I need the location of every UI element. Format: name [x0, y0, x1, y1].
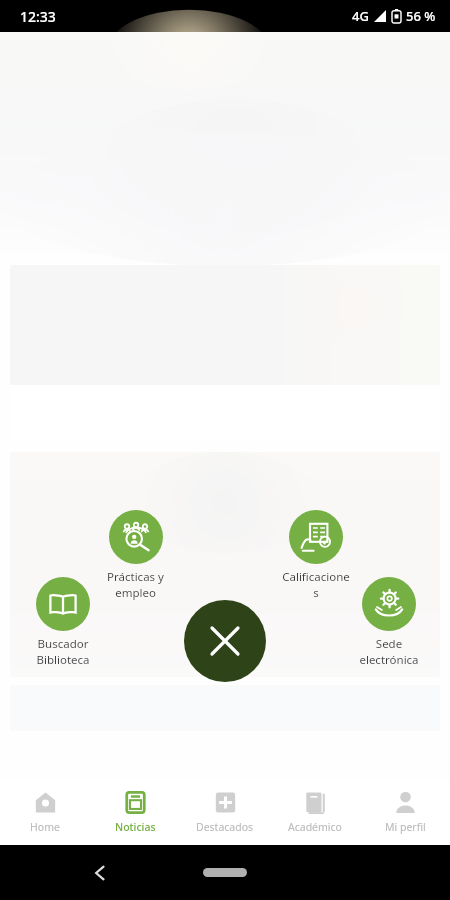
- button[interactable]: Académico: [270, 780, 360, 845]
- button[interactable]: Home: [0, 780, 90, 845]
- button[interactable]: Buscador Biblioteca: [8, 577, 118, 667]
- staticText: Sede electrónica: [359, 636, 419, 667]
- staticText: Noticias: [115, 820, 156, 834]
- staticText: 56 %: [406, 7, 436, 25]
- staticText: Académico: [288, 820, 342, 834]
- other: Home: [203, 868, 247, 877]
- other: Sede electrónica: [362, 577, 416, 631]
- staticText: Buscador Biblioteca: [36, 636, 90, 667]
- staticText: Destacados: [196, 820, 254, 834]
- staticText: 4G: [352, 7, 369, 25]
- other: Prácticas y empleo: [109, 510, 163, 564]
- staticText: Calificacione s: [282, 569, 350, 600]
- other: Calificaciones: [289, 510, 343, 564]
- button[interactable]: Mi perfil: [360, 780, 450, 845]
- button[interactable]: Sede electrónica: [334, 577, 444, 667]
- button[interactable]: Cerrar menú: [184, 600, 266, 682]
- other: Back: [92, 865, 108, 881]
- button[interactable]: Calificaciones: [261, 510, 371, 600]
- staticText: Mi perfil: [385, 820, 426, 834]
- staticText: Home: [30, 820, 60, 834]
- button[interactable]: Destacados: [180, 780, 270, 845]
- staticText: Prácticas y empleo: [107, 569, 164, 600]
- button[interactable]: Prácticas y empleo: [80, 510, 190, 600]
- other: Buscador Biblioteca: [36, 577, 90, 631]
- staticText: 12:33: [20, 7, 56, 26]
- button[interactable]: Noticias: [90, 780, 180, 845]
